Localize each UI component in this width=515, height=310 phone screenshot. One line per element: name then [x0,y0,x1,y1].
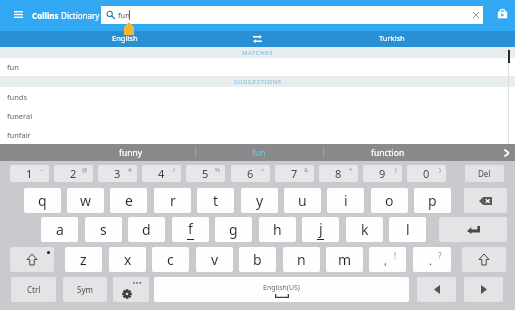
button[interactable]: r [154,188,191,213]
button[interactable]: k [346,217,383,242]
button[interactable]: Enter [439,217,507,242]
staticText: 6 [247,166,254,181]
button[interactable]: 6 [231,165,270,182]
staticText: 9 [379,166,386,181]
button[interactable]: s [85,217,122,242]
button[interactable]: Menu [8,4,28,24]
staticText: 0 [423,166,430,181]
button[interactable]: j [302,217,339,242]
button[interactable]: Ctrl [11,277,56,302]
staticText: u [298,191,307,210]
staticText: 3 [114,166,121,181]
staticText: 5 [202,166,209,181]
button[interactable]: g [215,217,252,242]
staticText: Ctrl [27,284,41,295]
button[interactable]: 8 [319,165,358,182]
button[interactable]: i [327,188,364,213]
button[interactable]: Turkish [267,31,515,47]
staticText: ? [438,250,442,261]
button[interactable]: h [259,217,296,242]
button[interactable]: Backspace [464,188,507,213]
button[interactable]: Sym [63,277,107,302]
button[interactable]: funeral [0,106,515,125]
staticText: @ [82,166,88,174]
staticText: k [361,220,369,239]
button[interactable]: n [283,247,320,272]
staticText: e [125,191,133,210]
staticText: MATCHES [242,49,274,57]
staticText: fun [252,147,266,159]
button[interactable]: 2 [54,165,93,182]
button[interactable]: a [41,217,78,242]
staticText: SUGGESTIONS [234,78,282,86]
staticText: p [428,191,437,210]
button[interactable]: Swap languages [247,31,267,47]
button[interactable]: funfair [0,125,515,144]
staticText: w [80,191,92,210]
button[interactable]: m [326,247,363,272]
button[interactable]: u [284,188,321,213]
button[interactable]: t [197,188,234,213]
staticText: r [170,191,176,210]
staticText: 4 [158,166,165,181]
button[interactable]: b [239,247,276,272]
staticText: funeral [7,111,33,121]
button[interactable]: d [128,217,165,242]
button[interactable]: function [323,144,452,161]
button[interactable]: z [65,247,102,272]
staticText: funny [119,147,143,159]
button[interactable]: 5 [186,165,225,182]
button[interactable]: x [109,247,146,272]
staticText: t [213,191,219,210]
button[interactable]: y [241,188,278,213]
button[interactable]: Store [494,5,511,22]
button[interactable]: w [67,188,104,213]
button[interactable]: l [389,217,426,242]
button[interactable]: p [414,188,451,213]
button[interactable]: Left [417,277,456,302]
button[interactable]: q [24,188,61,213]
button[interactable]: fun [0,58,515,76]
button[interactable]: 1 [10,165,49,182]
button[interactable]: fun [101,6,483,24]
button[interactable]: Shift [10,247,54,272]
button[interactable]: Clear [469,8,483,22]
button[interactable]: Shift [462,247,506,272]
button[interactable]: More suggestions [498,144,515,161]
button[interactable]: Del [465,165,504,182]
staticText: English(US) [263,283,300,293]
staticText: funds [7,92,28,102]
button[interactable]: 3 [98,165,137,182]
button[interactable]: Right [464,277,503,302]
staticText: o [385,191,394,210]
button[interactable]: funds [0,87,515,106]
staticText: l [406,220,410,239]
staticText: funfair [7,130,31,140]
button[interactable]: funny [66,144,195,161]
button[interactable]: o [371,188,408,213]
button[interactable]: e [110,188,147,213]
button[interactable]: 9 [363,165,402,182]
staticText: Turkish [379,33,405,43]
button[interactable]: , [369,247,406,272]
staticText: z [80,250,87,269]
staticText: x [124,250,132,269]
staticText: . [429,253,432,268]
staticText: q [38,191,47,210]
staticText: 7 [291,166,298,181]
button[interactable]: Collins [32,0,100,31]
button[interactable]: 0 [407,165,446,182]
staticText: Sym [77,284,93,295]
button[interactable]: f [172,217,209,242]
button[interactable]: Space [154,277,409,302]
staticText: Del [478,168,491,179]
button[interactable]: c [152,247,189,272]
button[interactable]: v [196,247,233,272]
button[interactable]: Settings [113,277,149,302]
button[interactable]: 7 [275,165,314,182]
button[interactable]: 4 [142,165,181,182]
button[interactable]: English [0,31,250,47]
staticText: ^ [261,166,265,174]
button[interactable]: fun [195,144,323,161]
button[interactable]: . [413,247,451,272]
